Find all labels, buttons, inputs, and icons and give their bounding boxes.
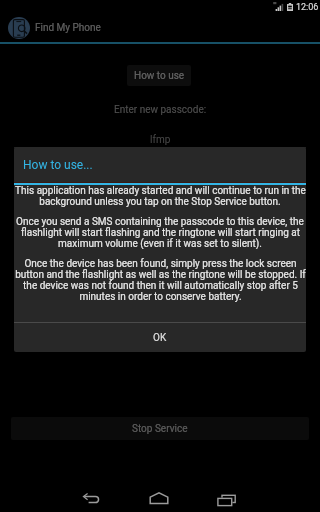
staticText: How to use xyxy=(134,70,185,82)
staticText: background unless you tap on the Stop Se… xyxy=(39,196,281,207)
staticText: 12:06 xyxy=(296,2,319,13)
button[interactable]: Back xyxy=(60,472,126,512)
button[interactable]: Find My Phone xyxy=(0,14,320,42)
button[interactable]: Stop Service xyxy=(11,417,309,440)
staticText: the device was not found then it will au… xyxy=(23,280,298,291)
staticText: Stop Service xyxy=(132,423,188,435)
staticText: Find My Phone xyxy=(35,22,101,34)
button[interactable]: How to use xyxy=(127,65,191,86)
staticText: OK xyxy=(153,332,167,344)
staticText: minutes in order to conserve battery. xyxy=(79,291,242,302)
staticText: How to use... xyxy=(23,158,93,172)
staticText: Enter new passcode: xyxy=(114,104,207,116)
staticText: Once you send a SMS containing the passc… xyxy=(16,216,304,227)
staticText: Once the device has been found, simply p… xyxy=(24,258,297,269)
button[interactable]: Home xyxy=(127,472,193,512)
button[interactable]: OK xyxy=(14,323,306,352)
staticText: flashlight will start flashing and the r… xyxy=(21,227,300,238)
staticText: button and the flashlight as well as the… xyxy=(15,269,306,280)
staticText: lfmp xyxy=(150,134,171,146)
staticText: maximum volume (even if it was set to si… xyxy=(58,238,262,249)
button[interactable]: Recent apps xyxy=(195,472,261,512)
staticText: This application has already started and… xyxy=(15,185,306,196)
